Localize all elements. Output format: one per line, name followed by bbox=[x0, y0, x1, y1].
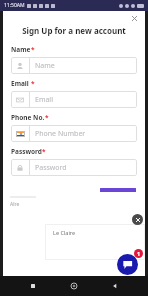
staticText: Name bbox=[11, 45, 31, 54]
staticText: * bbox=[31, 45, 35, 54]
button[interactable]: Back bbox=[107, 278, 123, 294]
staticText: Sign Up for a new account bbox=[3, 25, 145, 36]
button[interactable]: Close bbox=[129, 13, 139, 23]
staticText: * bbox=[31, 79, 35, 88]
staticText: 1 bbox=[137, 250, 141, 257]
button[interactable]: Email bbox=[11, 91, 137, 108]
button[interactable]: Phone Number bbox=[11, 125, 137, 142]
staticText: Password bbox=[35, 163, 67, 173]
button[interactable]: Name bbox=[11, 57, 137, 74]
staticText: Password bbox=[11, 147, 42, 156]
button[interactable]: Home bbox=[66, 278, 82, 294]
staticText: Phone No. bbox=[11, 113, 45, 122]
staticText: * bbox=[45, 113, 49, 122]
button[interactable]: Chat bbox=[117, 254, 138, 275]
button[interactable]: Recents bbox=[25, 278, 41, 294]
staticText: Name bbox=[35, 61, 55, 71]
staticText: * bbox=[42, 147, 46, 156]
staticText: Phone Number bbox=[35, 129, 86, 139]
button[interactable]: Dismiss bbox=[132, 214, 143, 225]
staticText: 11:50AM bbox=[4, 2, 25, 9]
button[interactable]: Password bbox=[11, 159, 137, 176]
staticText: Email bbox=[35, 95, 53, 105]
button[interactable]: Le Claire bbox=[45, 224, 145, 260]
staticText: Email bbox=[11, 79, 29, 88]
staticText: Le Claire bbox=[53, 229, 76, 236]
staticText: Alre bbox=[10, 201, 20, 208]
